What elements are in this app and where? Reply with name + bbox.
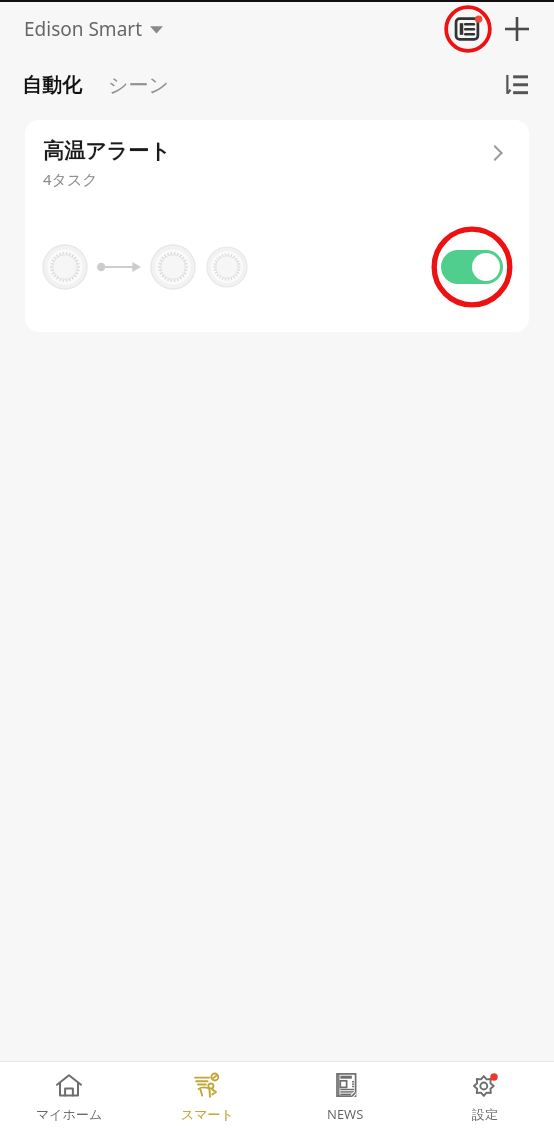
- button[interactable]: Messages: [442, 3, 494, 55]
- button[interactable]: マイホーム: [0, 1062, 138, 1130]
- button[interactable]: Open automation: [483, 138, 513, 168]
- staticText: 設定: [472, 1106, 498, 1122]
- button[interactable]: Edison Smart: [22, 10, 165, 48]
- button[interactable]: NEWS: [276, 1062, 415, 1130]
- button[interactable]: スマート: [138, 1062, 276, 1130]
- staticText: Edison Smart: [24, 16, 142, 42]
- button[interactable]: Enable automation: [429, 224, 515, 310]
- button[interactable]: 自動化: [20, 67, 84, 104]
- staticText: スマート: [181, 1106, 234, 1122]
- button[interactable]: シーン: [106, 67, 171, 104]
- button[interactable]: 高温アラート: [25, 120, 529, 332]
- button[interactable]: 設定: [415, 1062, 554, 1130]
- staticText: 4タスク: [43, 169, 98, 189]
- staticText: NEWS: [327, 1105, 364, 1123]
- staticText: 自動化: [22, 73, 82, 98]
- staticText: マイホーム: [36, 1106, 103, 1122]
- button[interactable]: Add: [494, 6, 540, 52]
- staticText: シーン: [108, 73, 169, 98]
- staticText: 高温アラート: [43, 138, 171, 164]
- button[interactable]: Sort: [494, 63, 538, 107]
